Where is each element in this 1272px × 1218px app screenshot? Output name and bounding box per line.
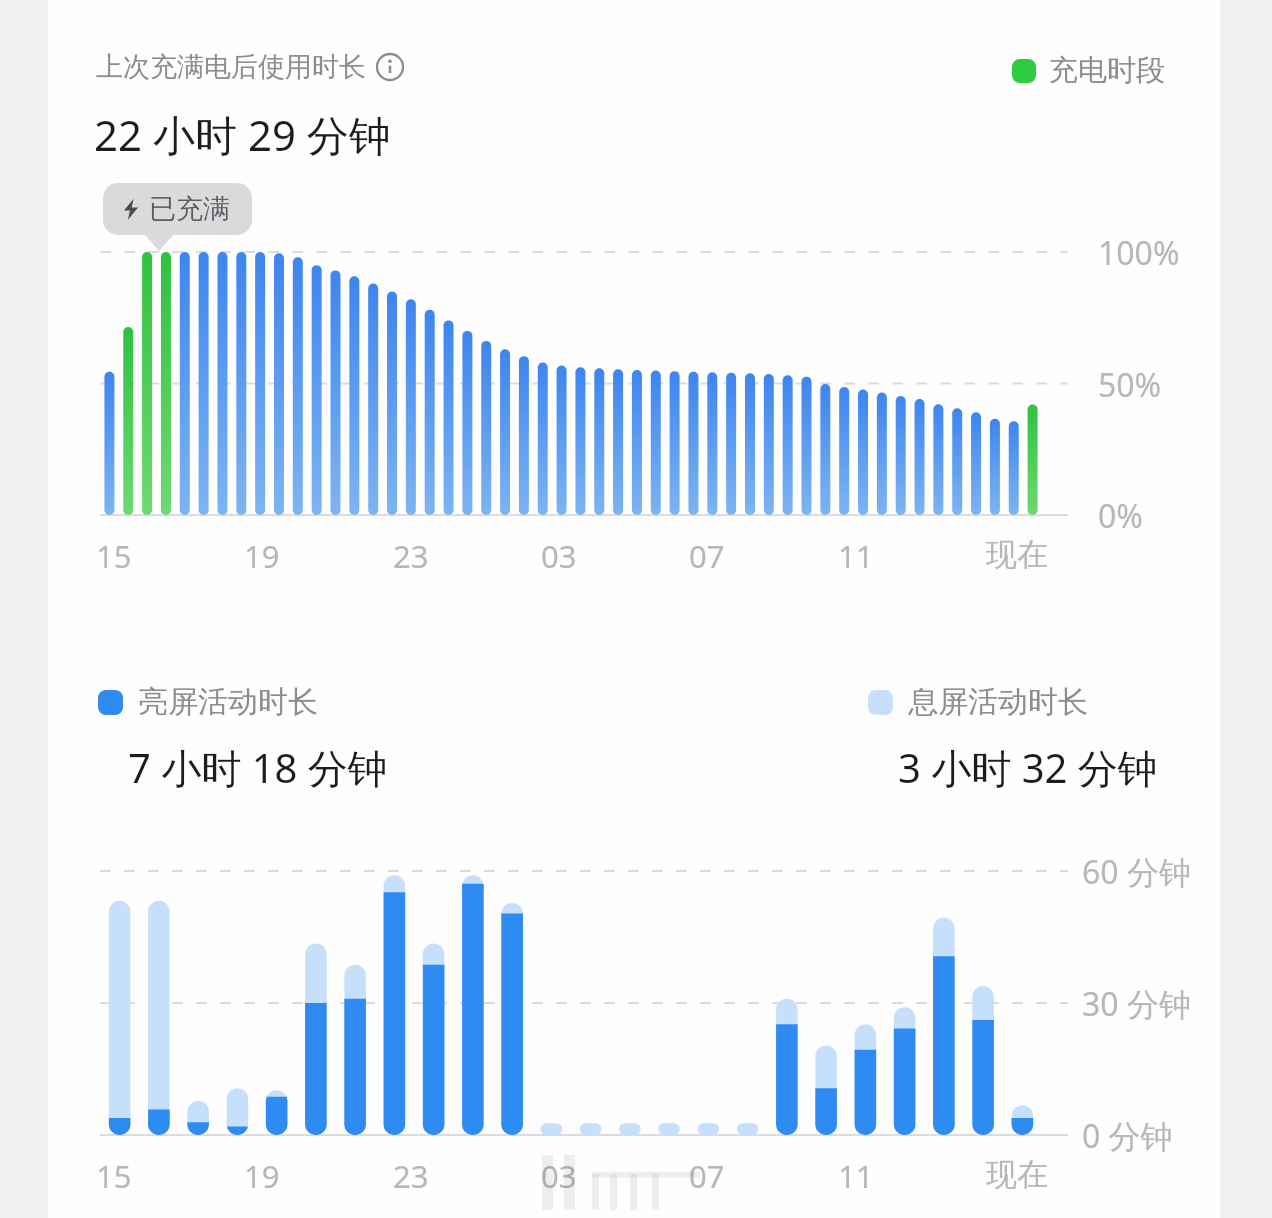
- button[interactable]: 充电时段: [1012, 52, 1165, 89]
- staticText: 11: [838, 535, 874, 577]
- staticText: 50%: [1098, 363, 1162, 407]
- staticText: 现在: [986, 535, 1048, 574]
- staticText: 7 小时 18 分钟: [128, 740, 388, 795]
- staticText: 23: [393, 1155, 429, 1197]
- staticText: 15: [96, 535, 132, 577]
- staticText: 3 小时 32 分钟: [898, 740, 1158, 795]
- staticText: 息屏活动时长: [908, 683, 1088, 721]
- staticText: 19: [244, 1155, 280, 1197]
- staticText: 03: [541, 535, 577, 577]
- staticText: 07: [689, 1155, 725, 1197]
- staticText: 30 分钟: [1082, 982, 1191, 1026]
- staticText: 已充满: [149, 192, 230, 226]
- staticText: 22 小时 29 分钟: [94, 106, 391, 163]
- button[interactable]: 息屏活动时长: [868, 683, 1088, 721]
- staticText: 03: [541, 1155, 577, 1197]
- staticText: 100%: [1098, 231, 1180, 275]
- staticText: 亮屏活动时长: [138, 683, 318, 721]
- staticText: 0%: [1098, 494, 1143, 538]
- staticText: 15: [96, 1155, 132, 1197]
- staticText: 23: [393, 535, 429, 577]
- button[interactable]: 已充满: [103, 183, 252, 235]
- staticText: 上次充满电后使用时长: [96, 50, 366, 84]
- button[interactable]: 亮屏活动时长: [98, 683, 318, 721]
- staticText: 07: [689, 535, 725, 577]
- staticText: 60 分钟: [1082, 850, 1191, 894]
- staticText: 11: [838, 1155, 874, 1197]
- staticText: 0 分钟: [1082, 1114, 1173, 1158]
- staticText: 19: [244, 535, 280, 577]
- button[interactable]: 上次充满电后使用时长: [96, 50, 405, 84]
- other: More information: [375, 52, 405, 82]
- staticText: 现在: [986, 1155, 1048, 1194]
- staticText: 充电时段: [1049, 52, 1165, 89]
